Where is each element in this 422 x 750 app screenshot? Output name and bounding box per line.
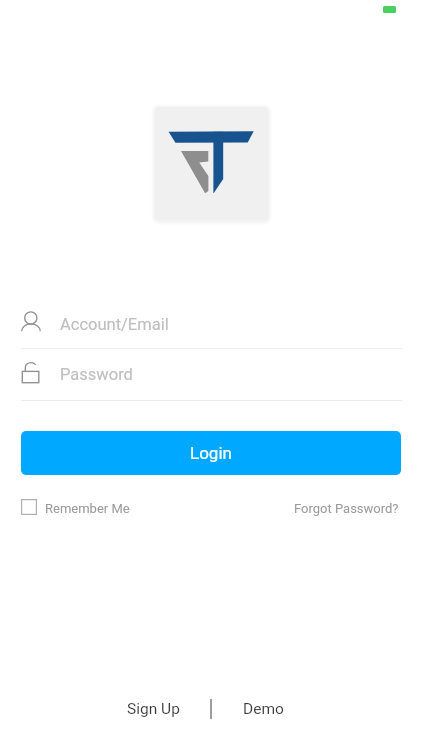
button[interactable]: Login	[21, 431, 401, 475]
button[interactable]: Account	[0, 302, 422, 349]
other: Account	[21, 312, 40, 334]
staticText: Password	[60, 365, 133, 384]
staticText: Demo	[243, 700, 284, 718]
staticText: Account/Email	[60, 315, 169, 334]
staticText: Login	[190, 443, 232, 463]
button[interactable]: Demo	[243, 700, 284, 718]
button[interactable]: Sign Up	[127, 700, 180, 718]
button[interactable]: Password	[0, 352, 422, 400]
button[interactable]: Forgot Password?	[294, 501, 399, 516]
staticText: Forgot Password?	[294, 501, 399, 516]
other: Password	[21, 362, 40, 384]
button[interactable]: Remember Me	[21, 497, 127, 517]
staticText: Sign Up	[127, 700, 180, 718]
staticText: Remember Me	[45, 501, 130, 516]
